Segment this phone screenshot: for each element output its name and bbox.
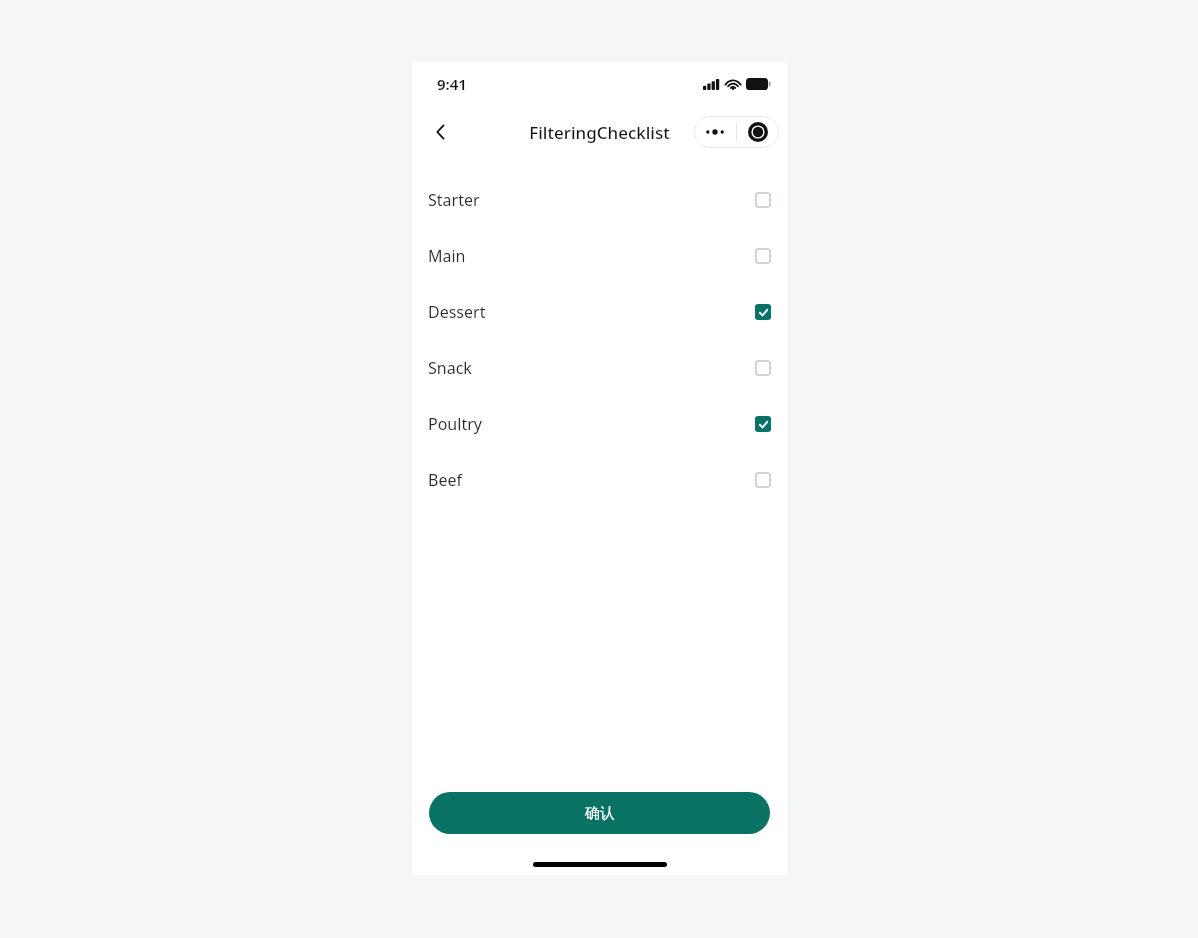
staticText: Beef <box>428 469 462 491</box>
button[interactable]: Poultry <box>412 396 787 452</box>
button[interactable]: Main <box>412 228 787 284</box>
button[interactable]: More options <box>694 116 736 148</box>
staticText: Snack <box>428 357 472 379</box>
button[interactable]: Back <box>421 112 461 152</box>
staticText: Dessert <box>428 301 486 323</box>
button[interactable]: Starter <box>412 172 787 228</box>
button[interactable]: Snack <box>412 340 787 396</box>
staticText: 9:41 <box>437 74 467 94</box>
staticText: FilteringChecklist <box>529 121 670 144</box>
staticText: 确认 <box>585 804 615 823</box>
staticText: Starter <box>428 189 480 211</box>
button[interactable]: Dessert <box>412 284 787 340</box>
button[interactable]: 确认 <box>429 792 770 834</box>
staticText: Main <box>428 245 466 267</box>
button[interactable]: Beef <box>412 452 787 508</box>
staticText: Poultry <box>428 413 482 435</box>
button[interactable]: Record <box>737 116 779 148</box>
